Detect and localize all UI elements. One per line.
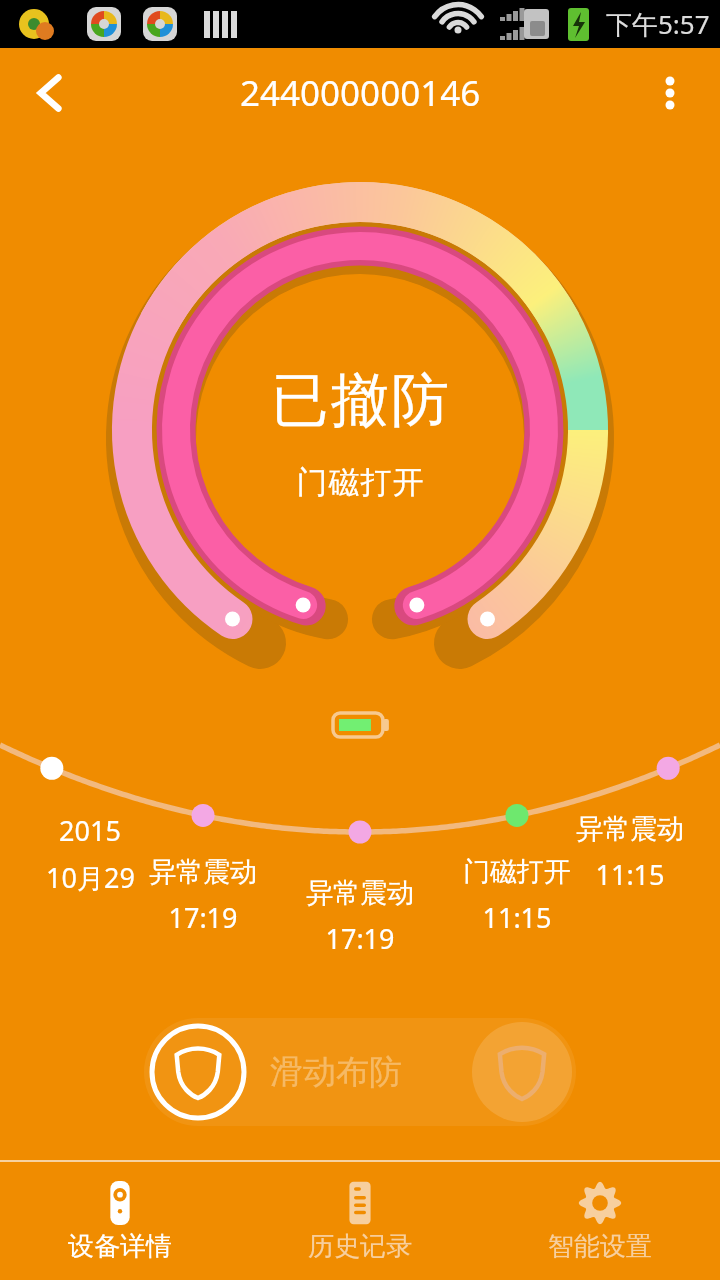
button[interactable]: Back <box>16 59 84 127</box>
staticText: 17:19 <box>168 899 238 936</box>
button[interactable]: More options <box>636 59 704 127</box>
staticText: 已撤防 <box>270 364 450 437</box>
staticText: 异常震动 <box>306 876 414 910</box>
staticText: 11:15 <box>595 856 665 893</box>
button[interactable]: 异常震动 <box>540 812 720 893</box>
staticText: 设备详情 <box>68 1230 172 1263</box>
button[interactable]: 智能设置 <box>480 1162 720 1280</box>
staticText: 11:15 <box>482 899 552 936</box>
staticText: 10月29 <box>46 859 135 896</box>
staticText: 历史记录 <box>308 1230 412 1263</box>
button[interactable]: 2015 <box>0 812 180 896</box>
staticText: 门磁打开 <box>296 463 424 502</box>
staticText: 智能设置 <box>548 1230 652 1263</box>
staticText: 17:19 <box>325 920 395 957</box>
button[interactable]: 门磁打开 <box>427 855 607 936</box>
staticText: 异常震动 <box>149 855 257 889</box>
button[interactable]: 异常震动 <box>113 855 293 936</box>
button[interactable]: 设备详情 <box>0 1162 240 1280</box>
button[interactable]: 滑动布防 <box>144 1018 576 1126</box>
staticText: 滑动布防 <box>270 1051 402 1093</box>
staticText: 244000000146 <box>240 69 481 117</box>
staticText: 异常震动 <box>576 812 684 846</box>
staticText: 下午5:57 <box>606 6 710 42</box>
staticText: 门磁打开 <box>463 855 571 889</box>
staticText: 2015 <box>59 812 121 849</box>
button[interactable]: 异常震动 <box>270 876 450 957</box>
button[interactable]: 历史记录 <box>240 1162 480 1280</box>
